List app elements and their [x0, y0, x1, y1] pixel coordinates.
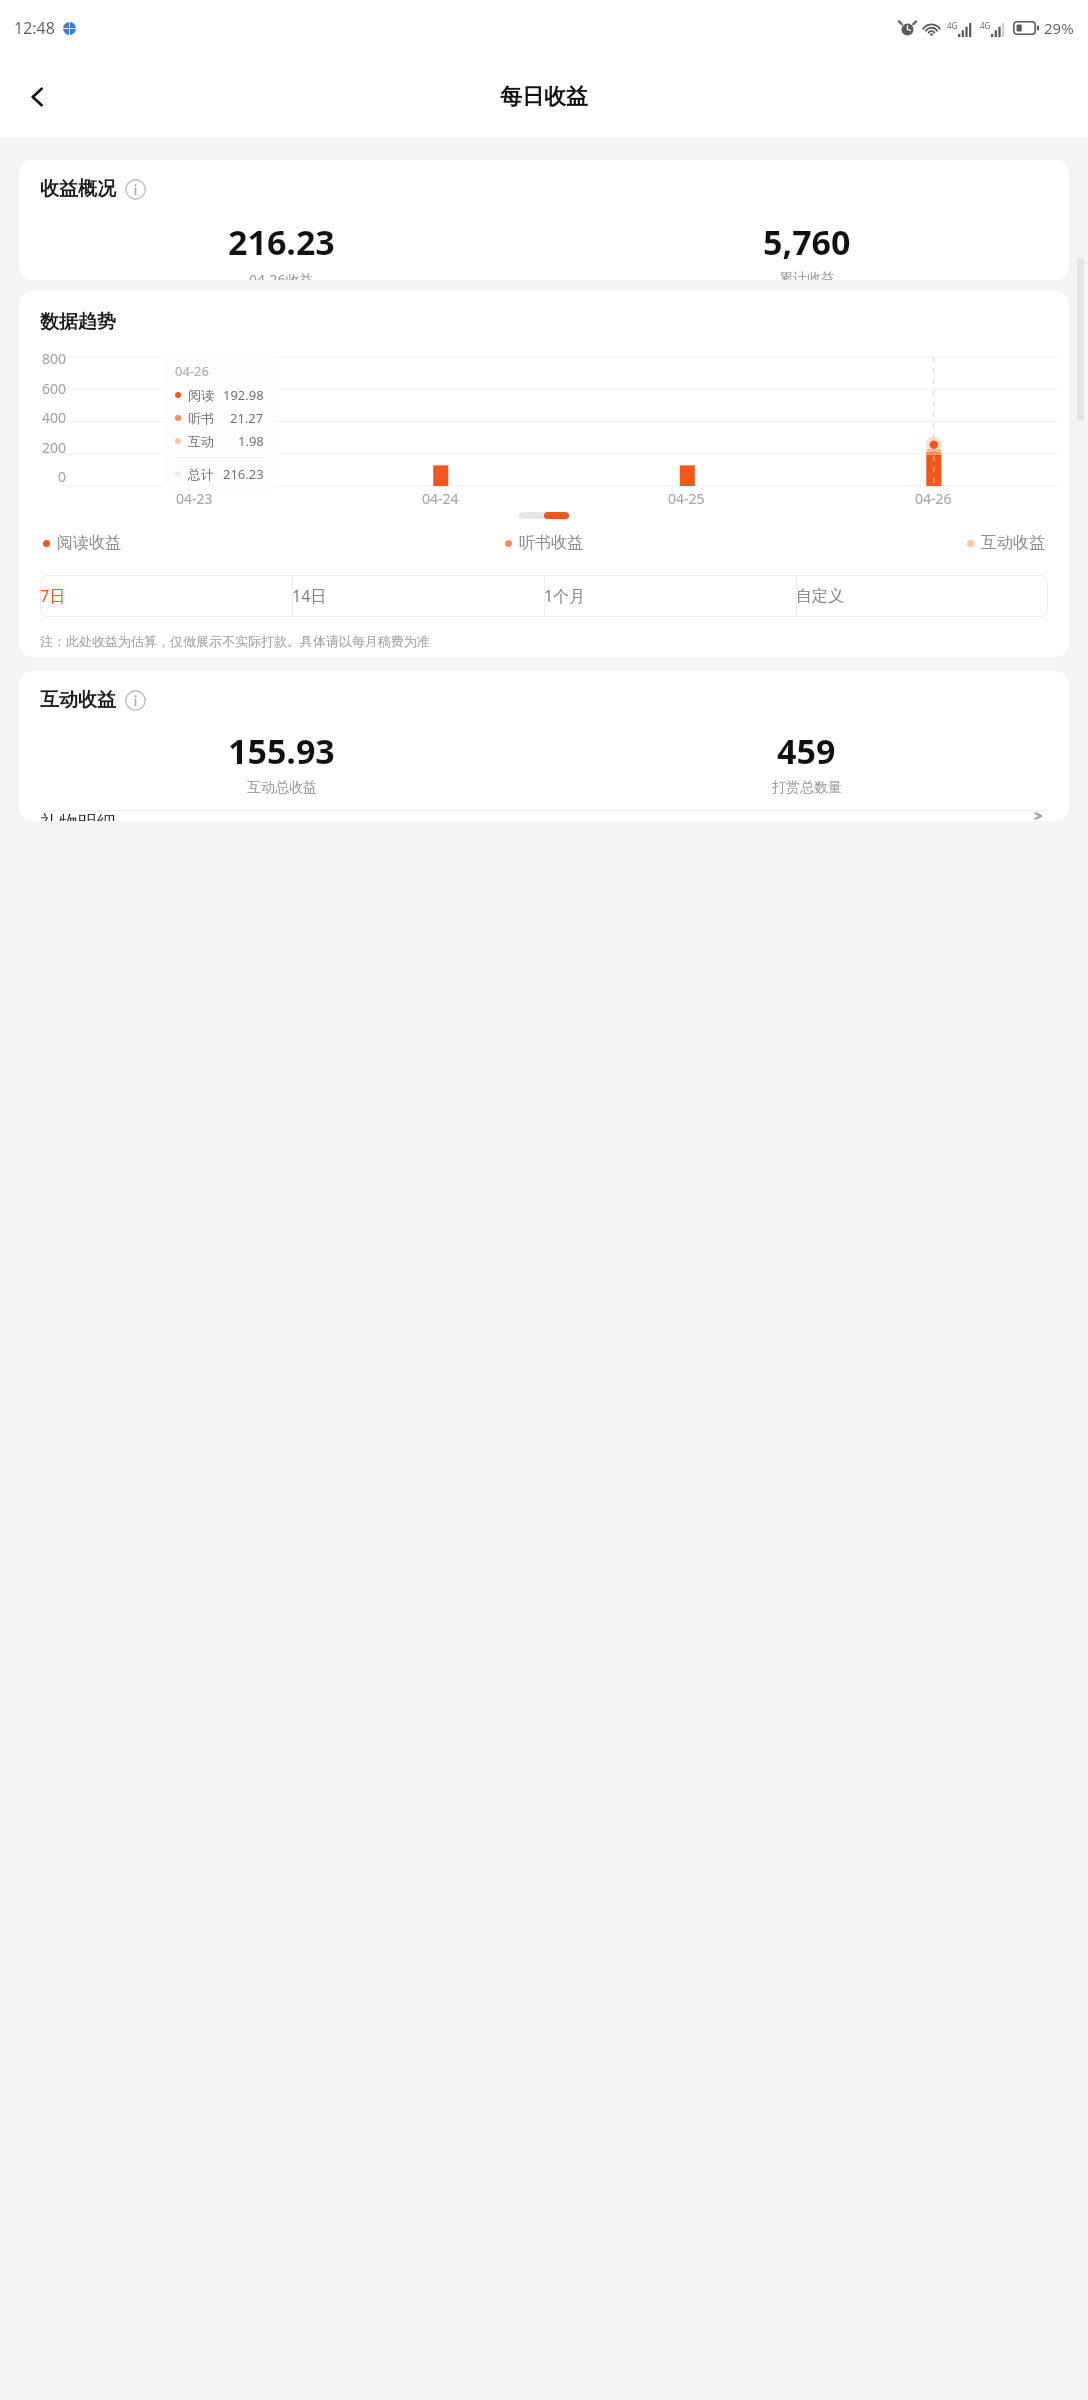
- staticText: 155.93: [228, 728, 335, 774]
- staticText: 5,760: [763, 219, 851, 265]
- staticText: 注：此处收益为估算，仅做展示不实际打款。具体请以每月稿费为准: [40, 633, 1048, 649]
- staticText: 459: [777, 728, 836, 774]
- staticText: 12:48: [14, 17, 55, 39]
- staticText: 听书: [188, 410, 214, 426]
- staticText: 数据趋势: [40, 310, 116, 334]
- staticText: 累计收益: [779, 270, 835, 280]
- staticText: 192.98: [223, 386, 264, 404]
- button[interactable]: Back: [10, 69, 66, 125]
- staticText: 400: [42, 408, 67, 427]
- staticText: 4G: [980, 20, 991, 31]
- staticText: 自定义: [796, 586, 1048, 606]
- button[interactable]: 礼物明细: [19, 811, 1069, 821]
- staticText: 04-23: [176, 489, 213, 508]
- staticText: 04-25: [668, 489, 705, 508]
- staticText: 1.98: [238, 432, 264, 450]
- staticText: 7日: [40, 585, 292, 607]
- staticText: 14日: [292, 585, 544, 607]
- staticText: 21.27: [230, 409, 264, 427]
- staticText: 每日收益: [500, 83, 588, 111]
- staticText: 打赏总数量: [772, 779, 842, 797]
- button[interactable]: 14日: [292, 575, 544, 617]
- staticText: 4G: [947, 20, 958, 31]
- staticText: 04-26: [175, 362, 209, 380]
- staticText: 04-24: [422, 489, 459, 508]
- staticText: 互动: [188, 433, 214, 449]
- staticText: 阅读收益: [57, 533, 121, 553]
- staticText: 200: [42, 438, 67, 457]
- staticText: 收益概况: [40, 177, 116, 201]
- button[interactable]: 说明: [125, 690, 146, 711]
- staticText: 600: [42, 379, 67, 398]
- button[interactable]: 自定义: [796, 575, 1048, 617]
- staticText: 互动总收益: [247, 779, 317, 797]
- button[interactable]: 7日: [40, 575, 292, 617]
- button[interactable]: 说明: [125, 179, 146, 200]
- staticText: 04-26: [915, 489, 952, 508]
- staticText: 阅读: [188, 387, 214, 403]
- staticText: 礼物明细: [40, 811, 116, 821]
- staticText: 216.23: [228, 219, 335, 265]
- staticText: 216.23: [223, 465, 264, 483]
- staticText: 听书收益: [519, 533, 583, 553]
- staticText: 总计: [188, 466, 214, 482]
- staticText: 互动收益: [40, 688, 116, 712]
- button[interactable]: 1个月: [544, 575, 796, 617]
- staticText: 1个月: [544, 585, 796, 607]
- staticText: 04-26收益: [249, 270, 314, 280]
- staticText: 0: [58, 467, 67, 486]
- staticText: 29%: [1044, 18, 1074, 38]
- staticText: 800: [42, 349, 67, 368]
- staticText: 互动收益: [981, 533, 1045, 553]
